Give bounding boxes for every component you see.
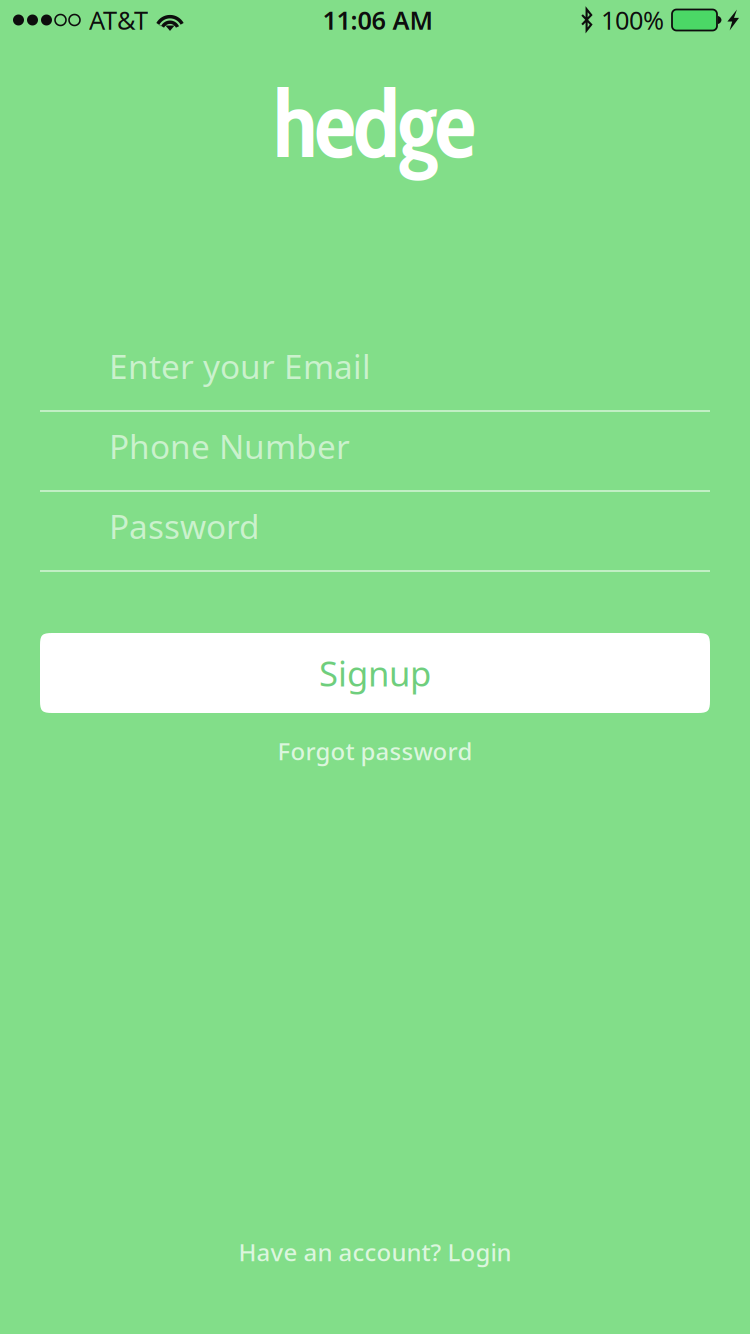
staticText: 11:06 AM bbox=[322, 3, 433, 37]
staticText: AT&T bbox=[89, 3, 148, 37]
staticText: Phone Number bbox=[109, 424, 350, 468]
staticText: Password bbox=[109, 504, 260, 548]
staticText: 100% bbox=[601, 3, 664, 37]
staticText: Signup bbox=[319, 650, 431, 696]
staticText: Enter your Email bbox=[109, 344, 371, 388]
staticText: Have an account? Login bbox=[238, 1236, 511, 1268]
button[interactable]: Have an account? Login bbox=[218, 1229, 531, 1275]
button[interactable]: Forgot password bbox=[261, 730, 488, 772]
staticText: hedge bbox=[273, 67, 477, 181]
button[interactable]: Signup bbox=[40, 633, 710, 713]
button[interactable]: Enter your Email bbox=[40, 332, 710, 412]
button[interactable]: Phone Number bbox=[40, 412, 710, 492]
staticText: Forgot password bbox=[277, 735, 472, 767]
button[interactable]: Password bbox=[40, 492, 710, 572]
